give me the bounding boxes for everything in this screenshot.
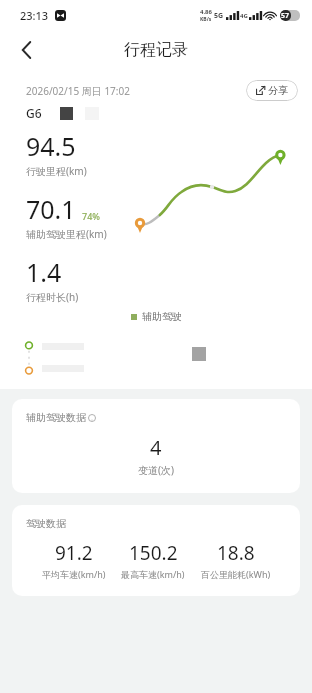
- staticText: 150.2: [129, 540, 178, 566]
- staticText: 变道(次): [138, 463, 174, 477]
- staticText: 驾驶数据: [26, 517, 66, 530]
- staticText: 91.2: [55, 540, 93, 566]
- staticText: 4G: [240, 12, 248, 20]
- staticText: 分享: [268, 84, 288, 97]
- staticText: 70.1: [26, 192, 76, 226]
- staticText: 23:13: [20, 8, 49, 23]
- staticText: 18.8: [217, 540, 255, 566]
- staticText: 辅助驾驶里程(km): [26, 227, 107, 241]
- staticText: 94.5: [26, 129, 76, 163]
- staticText: 行驶里程(km): [26, 164, 87, 178]
- staticText: 5G: [214, 11, 224, 21]
- staticText: 57: [281, 11, 290, 21]
- staticText: 百公里能耗(kWh): [201, 568, 271, 580]
- staticText: 74%: [82, 210, 100, 222]
- staticText: 2026/02/15 周日 17:02: [26, 84, 130, 98]
- staticText: 行程时长(h): [26, 290, 79, 304]
- staticText: 辅助驾驶: [142, 310, 182, 323]
- button[interactable]: 驾驶数据: [12, 505, 300, 596]
- button[interactable]: 分享: [246, 80, 298, 101]
- staticText: 平均车速(km/h): [42, 568, 106, 580]
- staticText: 行程记录: [124, 40, 188, 60]
- button[interactable]: 辅助驾驶数据: [12, 399, 300, 493]
- staticText: G6: [26, 105, 42, 121]
- staticText: KB/s: [200, 16, 212, 23]
- staticText: 1.4: [26, 255, 62, 289]
- staticText: 最高车速(km/h): [121, 568, 185, 580]
- staticText: 4.86: [200, 8, 212, 16]
- staticText: 4: [150, 434, 162, 461]
- staticText: 辅助驾驶数据: [26, 411, 86, 424]
- button[interactable]: Back: [8, 32, 44, 68]
